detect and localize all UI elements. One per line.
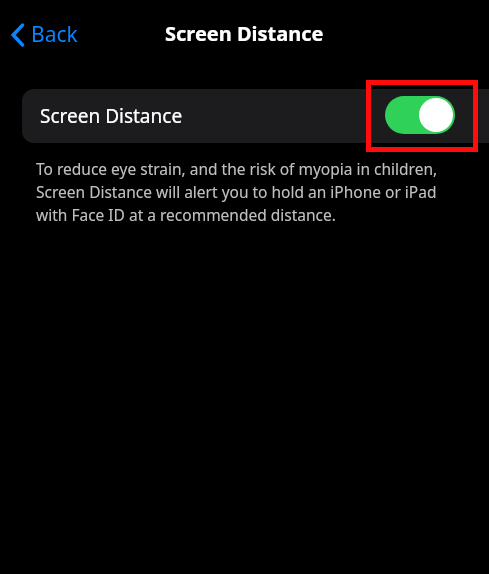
button[interactable]: Back [6,16,82,53]
button[interactable]: Screen Distance [22,89,489,143]
other: Back [10,22,26,48]
staticText: Back [31,20,78,49]
staticText: Screen Distance [165,20,324,47]
staticText: To reduce eye strain, and the risk of my… [36,158,447,226]
button[interactable]: Screen Distance toggle, on [385,96,455,134]
staticText: Screen Distance [40,103,183,129]
